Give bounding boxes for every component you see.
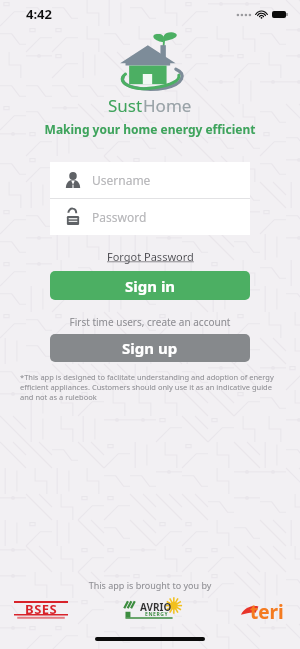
staticText: AVRIO (140, 600, 172, 614)
button[interactable]: Username (50, 162, 250, 198)
staticText: teri (250, 599, 284, 621)
button[interactable]: AVRIO (123, 599, 185, 621)
staticText: Sign in (125, 276, 176, 296)
staticText: Home (143, 94, 192, 117)
staticText: First time users, create an account (0, 315, 300, 329)
staticText: Sust (108, 94, 143, 117)
staticText: 4:42 (26, 5, 52, 23)
staticText: Making your home energy efficient (0, 121, 300, 137)
button[interactable]: teri (240, 599, 286, 621)
staticText: Password (92, 209, 147, 225)
button[interactable]: Forgot Password (99, 247, 202, 266)
staticText: Forgot Password (107, 249, 194, 264)
button[interactable]: Sign up (50, 334, 250, 362)
button[interactable]: Sign in (50, 271, 250, 300)
staticText: Sign up (122, 338, 178, 358)
button[interactable]: BSES (14, 600, 68, 620)
staticText: This app is brought to you by (0, 579, 300, 591)
staticText: BSES (25, 600, 58, 618)
staticText: ENERGY (145, 611, 169, 618)
staticText: *This app is designed to faclitate under… (20, 372, 278, 402)
staticText: Username (92, 172, 151, 188)
button[interactable]: Password (50, 199, 250, 235)
